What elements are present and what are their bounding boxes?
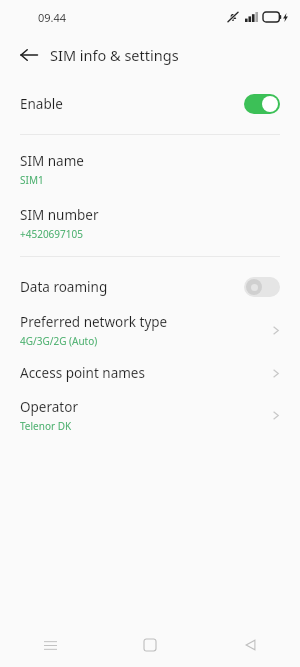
staticText: SIM info & settings xyxy=(50,45,179,65)
staticText: Operator xyxy=(20,398,78,416)
staticText: SIM name xyxy=(20,152,84,170)
button[interactable]: SIM name xyxy=(0,152,300,187)
button[interactable]: Data roaming xyxy=(0,270,300,304)
staticText: SIM number xyxy=(20,206,99,224)
staticText: Access point names xyxy=(20,364,145,382)
staticText: 4G/3G/2G (Auto) xyxy=(20,334,98,348)
button[interactable]: Back xyxy=(11,37,47,73)
staticText: Data roaming xyxy=(20,278,244,296)
staticText: +4520697105 xyxy=(20,227,83,241)
staticText: 09.44 xyxy=(38,10,67,25)
button[interactable]: Preferred network type xyxy=(0,313,300,348)
staticText: Telenor DK xyxy=(20,419,72,433)
button[interactable]: SIM number xyxy=(0,206,300,241)
button[interactable]: Enable xyxy=(0,84,300,124)
button[interactable]: Recent apps xyxy=(0,623,100,667)
button[interactable]: Access point names xyxy=(0,364,300,382)
button[interactable]: Home xyxy=(100,623,200,667)
staticText: SIM1 xyxy=(20,173,44,187)
button[interactable]: Operator xyxy=(0,398,300,433)
staticText: Enable xyxy=(20,95,244,113)
staticText: Preferred network type xyxy=(20,313,168,331)
button[interactable]: Back xyxy=(200,623,300,667)
